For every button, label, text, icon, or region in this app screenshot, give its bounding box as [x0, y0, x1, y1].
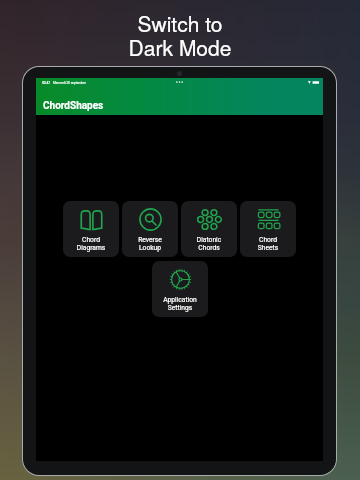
- staticText: Mercredi 28 septembre: [53, 81, 86, 85]
- staticText: Application Settings: [152, 296, 208, 311]
- button[interactable]: Reverse Lookup: [122, 201, 178, 257]
- staticText: Diatonic Chords: [181, 236, 237, 251]
- staticText: Reverse Lookup: [122, 236, 178, 251]
- button[interactable]: Chord Diagrams: [63, 201, 119, 257]
- staticText: 02:47: [42, 81, 51, 85]
- button[interactable]: Diatonic Chords: [181, 201, 237, 257]
- staticText: ChordShapes: [43, 100, 104, 112]
- staticText: Switch to Dark Mode: [0, 8, 360, 62]
- button[interactable]: Application Settings: [152, 261, 208, 317]
- staticText: Chord Sheets: [240, 236, 296, 251]
- button[interactable]: Chord Sheets: [240, 201, 296, 257]
- staticText: Chord Diagrams: [63, 236, 119, 251]
